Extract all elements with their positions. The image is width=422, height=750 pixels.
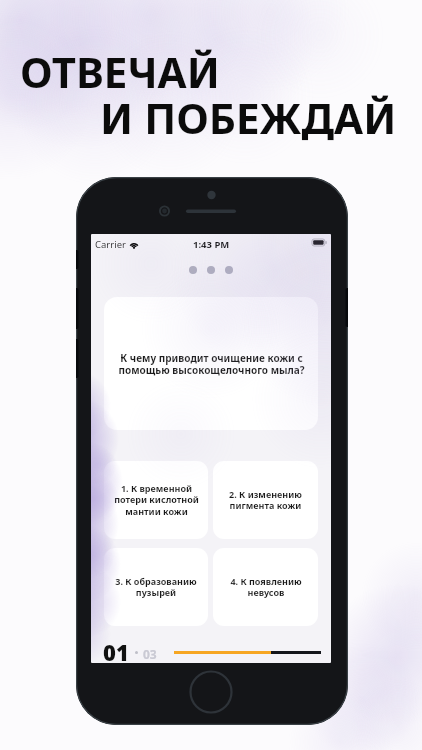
staticText: Carrier (95, 238, 126, 251)
staticText: 4. К появлению невусов (230, 575, 302, 599)
staticText: 03 (143, 646, 157, 662)
button[interactable]: 3. К образованию пузырей (104, 548, 208, 626)
button[interactable]: 2. К изменению пигмента кожи (213, 461, 318, 539)
staticText: И ПОБЕЖДАЙ (100, 89, 397, 146)
staticText: 01 (103, 637, 129, 663)
staticText: 2. К изменению пигмента кожи (229, 488, 302, 512)
staticText: 1. К временной потери кислотной мантии к… (114, 482, 199, 518)
staticText: 3. К образованию пузырей (115, 575, 197, 599)
staticText: ОТВЕЧАЙ (20, 43, 220, 100)
staticText: К чему приводит очищение кожи с помощью … (118, 351, 305, 377)
button[interactable]: К чему приводит очищение кожи с помощью … (104, 297, 318, 430)
button[interactable]: 4. К появлению невусов (213, 548, 318, 626)
button[interactable]: 1. К временной потери кислотной мантии к… (104, 461, 208, 539)
staticText: 1:43 PM (193, 238, 230, 251)
